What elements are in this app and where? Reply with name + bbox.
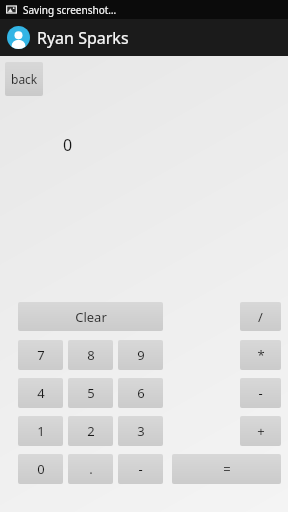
- staticText: -: [138, 460, 143, 478]
- staticText: -: [258, 384, 263, 402]
- button[interactable]: 2: [68, 416, 113, 446]
- staticText: 8: [87, 346, 95, 364]
- staticText: Saving screenshot…: [23, 3, 117, 17]
- staticText: =: [223, 460, 231, 478]
- staticText: 9: [137, 346, 145, 364]
- button[interactable]: 4: [18, 378, 63, 408]
- button[interactable]: *: [240, 340, 281, 370]
- staticText: 7: [37, 346, 45, 364]
- button[interactable]: .: [68, 454, 113, 484]
- staticText: 2: [87, 422, 95, 440]
- button[interactable]: Clear: [18, 302, 163, 331]
- button[interactable]: +: [240, 416, 281, 446]
- staticText: 0: [37, 460, 45, 478]
- staticText: 5: [87, 384, 95, 402]
- staticText: *: [257, 346, 265, 364]
- button[interactable]: /: [240, 302, 281, 331]
- button[interactable]: 6: [118, 378, 163, 408]
- staticText: Ryan Sparks: [37, 27, 129, 49]
- button[interactable]: -: [240, 378, 281, 408]
- button[interactable]: back: [5, 62, 43, 96]
- staticText: 3: [137, 422, 145, 440]
- staticText: +: [257, 422, 265, 440]
- button[interactable]: 8: [68, 340, 113, 370]
- button[interactable]: 9: [118, 340, 163, 370]
- button[interactable]: -: [118, 454, 163, 484]
- staticText: 6: [137, 384, 145, 402]
- staticText: 1: [37, 422, 45, 440]
- button[interactable]: 0: [18, 454, 63, 484]
- staticText: /: [258, 308, 263, 326]
- button[interactable]: =: [172, 454, 281, 484]
- staticText: .: [89, 460, 93, 478]
- staticText: 0: [63, 134, 73, 156]
- button[interactable]: 3: [118, 416, 163, 446]
- staticText: back: [11, 71, 38, 87]
- button[interactable]: 5: [68, 378, 113, 408]
- staticText: Clear: [75, 308, 107, 326]
- staticText: 4: [37, 384, 45, 402]
- button[interactable]: 7: [18, 340, 63, 370]
- button[interactable]: 1: [18, 416, 63, 446]
